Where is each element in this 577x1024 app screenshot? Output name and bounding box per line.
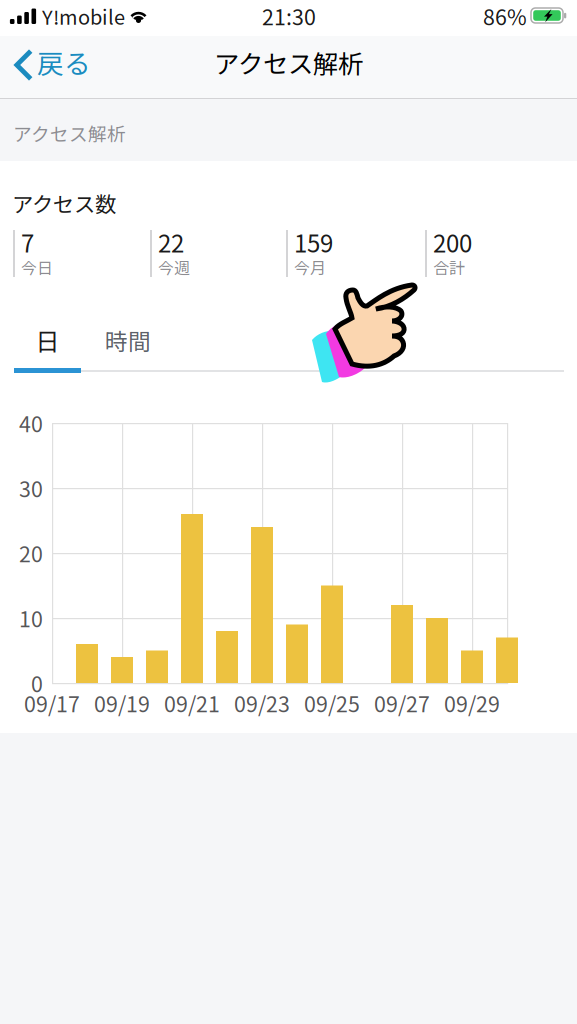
staticText: 10: [19, 603, 43, 633]
staticText: 20: [19, 538, 43, 568]
button[interactable]: 時間: [81, 316, 175, 364]
staticText: 0: [31, 668, 43, 698]
staticText: 40: [19, 408, 43, 438]
staticText: 09/19: [94, 688, 150, 718]
staticText: Y!mobile: [42, 1, 125, 30]
staticText: 86%: [483, 1, 527, 31]
staticText: 09/29: [444, 688, 500, 718]
staticText: 今日: [21, 255, 53, 279]
staticText: 21:30: [262, 1, 316, 31]
staticText: 合計: [433, 255, 465, 279]
staticText: 09/25: [304, 688, 360, 718]
staticText: 09/17: [24, 688, 80, 718]
staticText: 時間: [105, 324, 151, 356]
button[interactable]: 日: [14, 316, 81, 364]
staticText: 30: [19, 473, 43, 503]
staticText: 09/21: [164, 688, 220, 718]
staticText: 200: [433, 225, 472, 259]
staticText: 09/27: [374, 688, 430, 718]
staticText: 22: [158, 225, 184, 259]
button[interactable]: 戻る: [0, 36, 130, 99]
staticText: 今週: [158, 255, 190, 279]
staticText: アクセス解析: [13, 119, 126, 146]
staticText: 09/23: [234, 688, 290, 718]
staticText: 戻る: [37, 43, 91, 81]
staticText: アクセス数: [12, 188, 116, 218]
staticText: 日: [35, 323, 59, 357]
staticText: アクセス解析: [214, 44, 363, 81]
staticText: 159: [294, 225, 333, 259]
staticText: 7: [21, 225, 34, 259]
staticText: 今月: [294, 255, 326, 279]
